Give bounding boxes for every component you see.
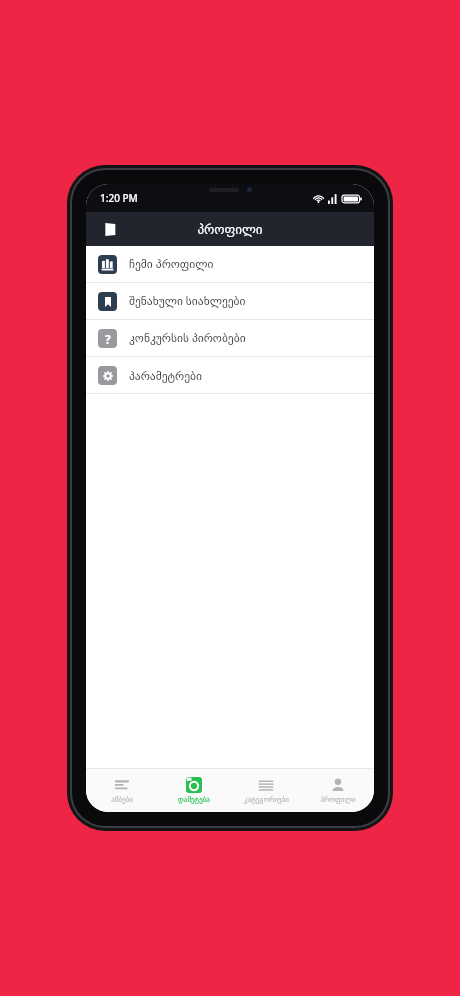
staticText: 1:20 PM <box>100 191 138 205</box>
button[interactable]: შენახული სიახლეები <box>86 283 374 319</box>
staticText: ? <box>105 331 111 347</box>
button[interactable]: ? <box>86 320 374 356</box>
staticText: კონკურსის პირობები <box>129 330 246 346</box>
button[interactable]: პარამეტრები <box>86 357 374 393</box>
button[interactable]: პროფილი <box>302 768 374 812</box>
button[interactable]: ჩემი პროფილი <box>86 246 374 282</box>
staticText: შენახული სიახლეები <box>129 293 246 309</box>
button[interactable]: ამბები <box>86 768 158 812</box>
staticText: ჩემი პროფილი <box>129 256 214 272</box>
staticText: კატეგორიები <box>244 796 289 804</box>
button[interactable]: დამეტება <box>158 768 230 812</box>
button[interactable]: Logo <box>98 218 120 240</box>
staticText: ამბები <box>111 796 133 804</box>
staticText: პროფილი <box>320 796 356 804</box>
button[interactable]: კატეგორიები <box>230 768 302 812</box>
staticText: პარამეტრები <box>129 369 202 382</box>
staticText: დამეტება <box>178 796 210 804</box>
staticText: პროფილი <box>197 222 263 237</box>
